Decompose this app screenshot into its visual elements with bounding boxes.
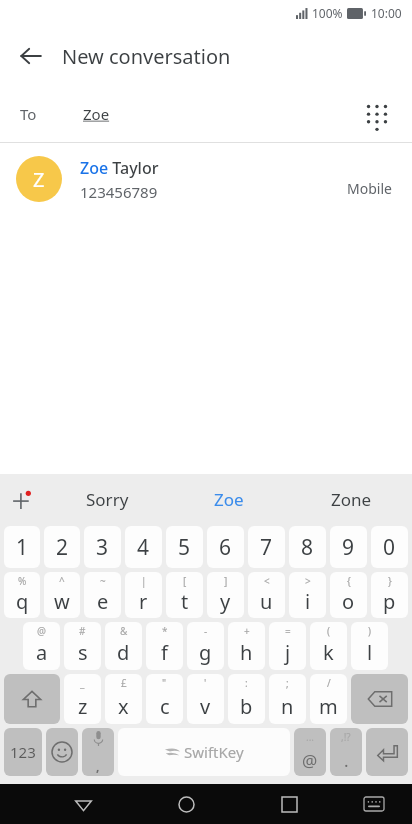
button[interactable]: { <box>330 572 367 618</box>
button[interactable]: ] <box>207 572 244 618</box>
button[interactable]: ~ <box>84 572 121 618</box>
button[interactable]: } <box>371 572 408 618</box>
button[interactable]: ' <box>187 674 224 724</box>
button[interactable]: Space <box>118 728 290 776</box>
button[interactable]: # <box>64 622 101 670</box>
staticText: ; <box>286 676 289 690</box>
button[interactable]: Voice input <box>82 728 114 776</box>
button[interactable]: * <box>146 622 183 670</box>
button[interactable]: ) <box>351 622 388 670</box>
button[interactable]: 4 <box>125 526 162 568</box>
staticText: g <box>199 639 212 666</box>
staticText: w <box>54 588 70 615</box>
staticText: @ <box>37 624 46 638</box>
button[interactable]: [ <box>166 572 203 618</box>
button[interactable]: Zone <box>290 474 412 524</box>
staticText: i <box>305 588 311 615</box>
staticText: y <box>220 588 231 615</box>
staticText: c <box>160 693 170 720</box>
button[interactable]: 7 <box>248 526 285 568</box>
button[interactable]: Zoe <box>168 474 290 524</box>
staticText: & <box>120 624 128 638</box>
button[interactable]: 9 <box>330 526 367 568</box>
button[interactable]: Dialpad <box>356 93 398 135</box>
button[interactable]: | <box>125 572 162 618</box>
button[interactable]: ( <box>310 622 347 670</box>
staticText: Zoe <box>214 488 244 511</box>
staticText: Zoe Taylor <box>80 157 159 179</box>
button[interactable]: Enter <box>366 728 408 776</box>
button[interactable]: Home <box>163 784 209 824</box>
button[interactable]: Backspace <box>351 674 408 724</box>
button[interactable]: Back <box>10 35 52 77</box>
button[interactable]: = <box>269 622 306 670</box>
button[interactable]: 1 <box>4 526 40 568</box>
staticText: " <box>162 676 167 690</box>
staticText: , <box>96 758 100 774</box>
staticText: | <box>141 574 147 588</box>
staticText: _ <box>80 676 85 690</box>
button[interactable]: : <box>228 674 265 724</box>
button[interactable]: @ <box>23 622 60 670</box>
button[interactable]: Add <box>0 474 46 524</box>
staticText: d <box>117 639 130 666</box>
staticText: % <box>18 574 27 588</box>
button[interactable]: 0 <box>371 526 408 568</box>
button[interactable]: _ <box>64 674 101 724</box>
staticText: = <box>285 624 291 638</box>
button[interactable]: ... <box>294 728 326 776</box>
staticText: ^ <box>59 574 65 588</box>
staticText: Zoe <box>83 104 110 124</box>
staticText: 1 <box>16 533 29 562</box>
staticText: / <box>327 676 331 690</box>
button[interactable]: / <box>310 674 347 724</box>
staticText: * <box>162 624 168 638</box>
button[interactable]: 8 <box>289 526 326 568</box>
button[interactable]: Sorry <box>46 474 168 524</box>
staticText: 123 <box>10 742 36 762</box>
staticText: Z <box>33 166 45 193</box>
button[interactable]: 123 <box>4 728 42 776</box>
staticText: £ <box>121 676 127 690</box>
button[interactable]: Switch keyboard <box>353 784 395 824</box>
staticText: - <box>204 624 208 638</box>
staticText: [ <box>183 574 187 588</box>
button[interactable]: 6 <box>207 526 244 568</box>
button[interactable]: 2 <box>44 526 80 568</box>
button[interactable]: £ <box>105 674 142 724</box>
staticText: h <box>240 639 253 666</box>
staticText: m <box>319 693 338 720</box>
button[interactable]: Shift <box>4 674 60 724</box>
button[interactable]: Zoe <box>83 104 110 124</box>
staticText: p <box>383 588 396 615</box>
staticText: 3 <box>96 533 109 562</box>
button[interactable]: ; <box>269 674 306 724</box>
button[interactable]: Back <box>60 784 106 824</box>
button[interactable]: < <box>248 572 285 618</box>
staticText: < <box>264 574 270 588</box>
button[interactable]: 5 <box>166 526 203 568</box>
staticText: ~ <box>100 574 106 588</box>
button[interactable]: > <box>289 572 326 618</box>
button[interactable]: 3 <box>84 526 121 568</box>
button[interactable]: Recents <box>266 784 312 824</box>
button[interactable]: ,!? <box>330 728 362 776</box>
staticText: SwiftKey <box>184 742 244 762</box>
button[interactable]: ^ <box>44 572 80 618</box>
button[interactable]: + <box>228 622 265 670</box>
button[interactable]: Emoji <box>46 728 78 776</box>
button[interactable]: - <box>187 622 224 670</box>
staticText: k <box>323 639 334 666</box>
staticText: ( <box>327 624 330 638</box>
button[interactable]: & <box>105 622 142 670</box>
button[interactable]: % <box>4 572 40 618</box>
staticText: 100% <box>312 5 343 21</box>
staticText: e <box>97 588 109 615</box>
staticText: 4 <box>137 533 150 562</box>
button[interactable]: Z <box>0 143 412 215</box>
staticText: r <box>139 588 148 615</box>
staticText: Zone <box>331 488 372 511</box>
staticText: 5 <box>178 533 191 562</box>
staticText: ] <box>224 574 228 588</box>
button[interactable]: " <box>146 674 183 724</box>
